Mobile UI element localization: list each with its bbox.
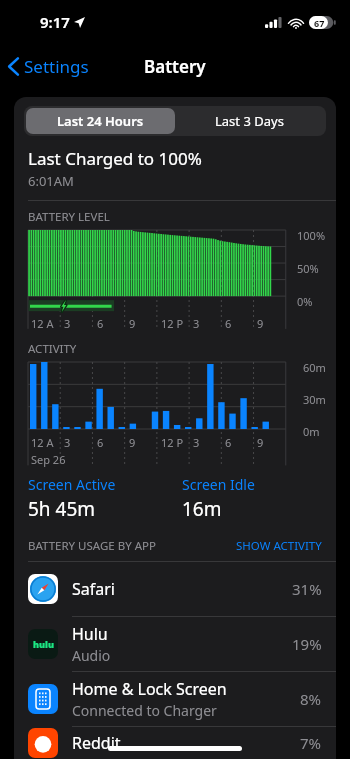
staticText: 67 — [314, 17, 325, 29]
staticText: 3 — [64, 435, 71, 450]
staticText: Sep 26 — [31, 452, 66, 467]
button[interactable]: Last 3 Days — [175, 108, 324, 134]
button[interactable]: Last 24 Hours — [26, 108, 175, 134]
staticText: 6 — [225, 316, 232, 331]
button[interactable]: Home and Lock Screen — [14, 672, 336, 726]
staticText: 9 — [257, 316, 264, 331]
staticText: 50% — [297, 261, 319, 276]
staticText: Safari — [72, 578, 115, 600]
staticText: 100% — [297, 228, 326, 243]
staticText: 16m — [182, 496, 222, 522]
staticText: 19% — [292, 634, 322, 654]
staticText: Hulu — [72, 623, 108, 645]
staticText: 0% — [297, 294, 313, 309]
staticText: SHOW ACTIVITY — [236, 538, 322, 554]
staticText: Last 24 Hours — [57, 112, 144, 130]
button[interactable]: Reddit — [14, 727, 336, 759]
other: Home and Lock Screen — [28, 684, 58, 714]
staticText: Screen Active — [28, 475, 116, 494]
staticText: 12 P — [161, 316, 184, 331]
staticText: Screen Idle — [182, 475, 255, 494]
staticText: 31% — [292, 579, 322, 599]
staticText: 0m — [303, 424, 320, 439]
staticText: 60m — [303, 360, 326, 375]
button[interactable]: Safari — [14, 562, 336, 616]
staticText: Connected to Charger — [72, 701, 217, 720]
staticText: BATTERY LEVEL — [28, 209, 110, 225]
staticText: 12 P — [161, 435, 184, 450]
staticText: 3 — [64, 316, 71, 331]
staticText: Battery — [144, 55, 206, 78]
staticText: 9 — [257, 435, 264, 450]
staticText: Home & Lock Screen — [72, 678, 227, 700]
other: Reddit — [28, 728, 58, 758]
staticText: Reddit — [72, 732, 121, 754]
staticText: hulu — [33, 638, 54, 650]
staticText: 3 — [193, 435, 200, 450]
staticText: 9:17 — [40, 12, 70, 32]
staticText: 3 — [193, 316, 200, 331]
staticText: 12 A — [31, 435, 54, 450]
staticText: 12 A — [31, 316, 54, 331]
staticText: 30m — [303, 392, 326, 407]
staticText: 5h 45m — [28, 496, 96, 522]
staticText: 7% — [300, 733, 322, 753]
other: Safari — [28, 574, 58, 604]
staticText: 8% — [300, 689, 322, 709]
staticText: 6 — [97, 316, 104, 331]
button[interactable]: Hulu — [14, 617, 336, 671]
staticText: 6 — [225, 435, 232, 450]
staticText: 9 — [129, 316, 136, 331]
button[interactable]: Settings — [0, 49, 99, 84]
staticText: ACTIVITY — [28, 341, 77, 357]
staticText: Audio — [72, 646, 111, 665]
staticText: Settings — [24, 55, 89, 78]
other: Hulu — [28, 629, 58, 659]
staticText: 6 — [97, 435, 104, 450]
staticText: Last 3 Days — [215, 112, 284, 130]
staticText: 6:01AM — [28, 172, 74, 190]
staticText: Last Charged to 100% — [28, 147, 202, 170]
staticText: 9 — [129, 435, 136, 450]
staticText: BATTERY USAGE BY APP — [28, 538, 156, 554]
button[interactable]: SHOW ACTIVITY — [236, 538, 322, 554]
